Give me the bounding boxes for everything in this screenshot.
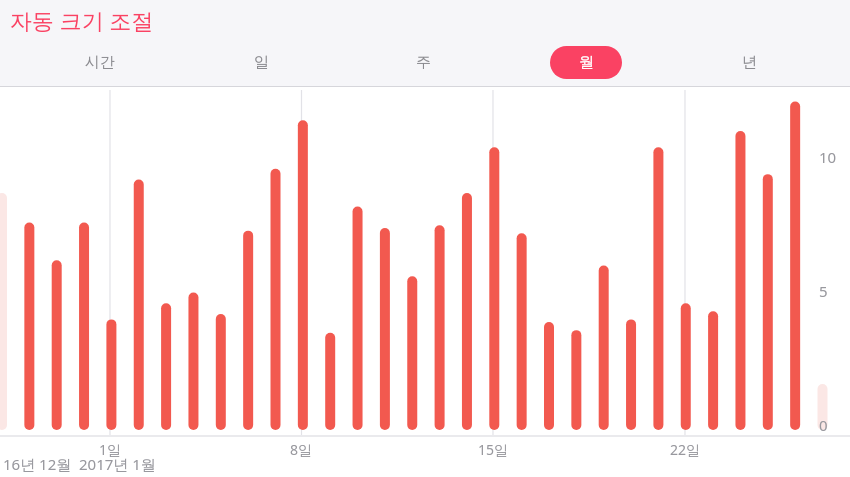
staticText: 5 — [819, 281, 828, 301]
staticText: 월 — [579, 53, 594, 72]
button[interactable]: 년 — [713, 46, 785, 79]
staticText: 자동 크기 조절 — [10, 5, 154, 35]
staticText: 1일 — [99, 440, 122, 458]
staticText: 일 — [254, 53, 269, 72]
button[interactable]: 일 — [225, 46, 297, 79]
staticText: 시간 — [85, 53, 115, 72]
staticText: 16년 12월 2017년 1월 — [3, 454, 156, 474]
staticText: 22일 — [670, 440, 701, 458]
staticText: 8일 — [290, 440, 313, 458]
staticText: 주 — [416, 53, 431, 72]
staticText: 년 — [742, 53, 757, 72]
staticText: 0 — [819, 415, 828, 435]
button[interactable]: 시간 — [64, 46, 136, 79]
staticText: 10 — [819, 147, 837, 167]
button[interactable]: 주 — [387, 46, 459, 79]
staticText: 15일 — [478, 440, 509, 458]
button[interactable]: 월 — [550, 46, 622, 79]
